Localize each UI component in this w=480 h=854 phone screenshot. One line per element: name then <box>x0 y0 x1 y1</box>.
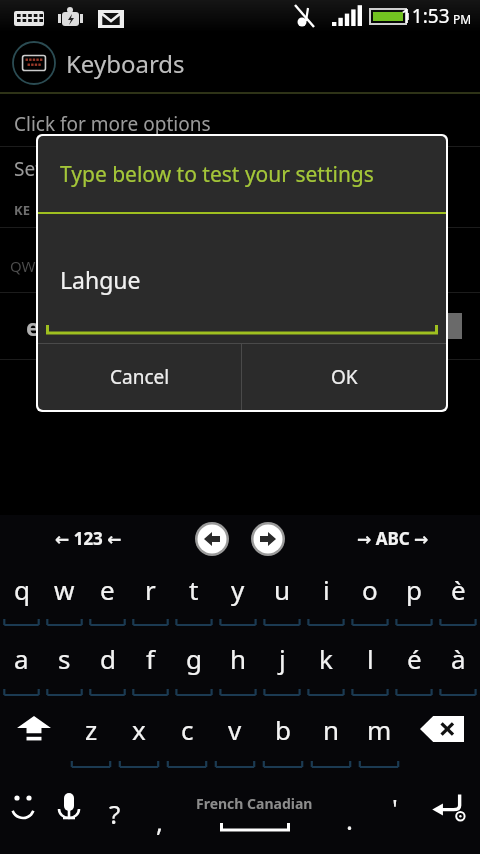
button[interactable]: Settings <box>0 147 480 191</box>
button[interactable]: h <box>216 630 260 700</box>
button[interactable]: o <box>348 562 392 630</box>
staticText: KE <box>14 201 30 219</box>
button[interactable]: z <box>67 700 115 772</box>
button[interactable]: Move left <box>195 522 229 556</box>
staticText: i <box>323 572 330 607</box>
button[interactable]: x <box>115 700 163 772</box>
button[interactable]: French Canadian <box>182 772 327 854</box>
staticText: p <box>406 572 422 607</box>
button[interactable]: k <box>304 630 348 700</box>
button[interactable]: Voice input <box>46 772 92 854</box>
button[interactable]: f <box>129 630 172 700</box>
staticText: Keyboards <box>66 47 185 80</box>
staticText: Type below to test your settings <box>60 160 374 189</box>
button[interactable]: ← 123 ← <box>28 515 148 562</box>
button[interactable]: . <box>327 772 372 854</box>
staticText: s <box>58 641 71 676</box>
button[interactable]: i <box>304 562 348 630</box>
staticText: n <box>323 712 340 747</box>
button[interactable]: d <box>86 630 129 700</box>
button[interactable]: OK <box>242 344 446 410</box>
button[interactable]: b <box>259 700 307 772</box>
button[interactable]: q <box>0 562 43 630</box>
button[interactable]: Move right <box>251 522 285 556</box>
staticText: z <box>85 712 98 747</box>
staticText: t <box>189 572 199 607</box>
staticText: ' <box>392 790 398 825</box>
button[interactable]: ? <box>92 772 137 854</box>
staticText: m <box>367 712 392 747</box>
staticText: l <box>367 641 374 676</box>
staticText: v <box>228 712 242 747</box>
staticText: Settings <box>14 156 87 182</box>
staticText: c <box>181 712 194 747</box>
button[interactable]: l <box>348 630 392 700</box>
staticText: a <box>14 641 29 676</box>
staticText: e <box>100 572 115 607</box>
staticText: y <box>231 572 245 607</box>
staticText: f <box>146 641 155 676</box>
button[interactable]: Cancel <box>38 344 241 410</box>
button[interactable]: v <box>211 700 259 772</box>
staticText: é <box>407 641 422 676</box>
button[interactable]: n <box>307 700 355 772</box>
button[interactable]: g <box>172 630 216 700</box>
button[interactable]: p <box>392 562 436 630</box>
staticText: QW <box>10 256 36 276</box>
button[interactable]: é <box>392 630 436 700</box>
staticText: h <box>230 641 247 676</box>
staticText: k <box>319 641 333 676</box>
staticText: ? <box>109 796 121 831</box>
button[interactable]: j <box>260 630 304 700</box>
staticText: q <box>14 572 30 607</box>
staticText: j <box>279 641 286 676</box>
button[interactable]: → ABC → <box>328 515 458 562</box>
staticText: PM <box>453 11 472 27</box>
staticText: Lahgue <box>60 264 141 295</box>
staticText: . <box>346 802 353 837</box>
staticText: è <box>451 572 466 607</box>
staticText: ← 123 ← <box>55 527 122 550</box>
staticText: à <box>451 641 466 676</box>
button[interactable]: , <box>137 772 182 854</box>
staticText: d <box>100 641 116 676</box>
button[interactable]: ' <box>372 772 417 854</box>
staticText: → ABC → <box>357 527 429 550</box>
button[interactable]: à <box>436 630 480 700</box>
button[interactable]: Click for more options <box>0 102 480 146</box>
button[interactable]: Enter <box>417 772 480 854</box>
button[interactable]: Emoji <box>0 772 46 854</box>
staticText: French Canadian <box>196 794 313 813</box>
staticText: Cancel <box>110 364 170 390</box>
staticText: x <box>132 712 146 747</box>
staticText: w <box>54 572 75 607</box>
staticText: g <box>186 641 202 676</box>
button[interactable]: u <box>260 562 304 630</box>
button[interactable]: c <box>163 700 211 772</box>
button[interactable]: è <box>436 562 480 630</box>
staticText: en <box>26 311 55 342</box>
button[interactable]: t <box>172 562 216 630</box>
button[interactable]: en <box>0 293 480 359</box>
button[interactable]: Keyboards <box>12 41 56 85</box>
button[interactable]: w <box>43 562 86 630</box>
staticText: 11:53 <box>401 3 450 29</box>
button[interactable]: Backspace <box>403 700 480 772</box>
staticText: b <box>275 712 291 747</box>
staticText: , <box>156 804 163 839</box>
button[interactable]: a <box>0 630 43 700</box>
staticText: r <box>145 572 156 607</box>
button[interactable]: e <box>86 562 129 630</box>
button[interactable]: m <box>355 700 403 772</box>
button[interactable]: Shift <box>0 700 67 772</box>
staticText: Click for more options <box>14 111 211 137</box>
staticText: o <box>362 572 378 607</box>
staticText: English <box>80 313 149 340</box>
staticText: u <box>274 572 291 607</box>
button[interactable]: r <box>129 562 172 630</box>
button[interactable]: s <box>43 630 86 700</box>
button[interactable]: y <box>216 562 260 630</box>
staticText: OK <box>331 364 358 390</box>
